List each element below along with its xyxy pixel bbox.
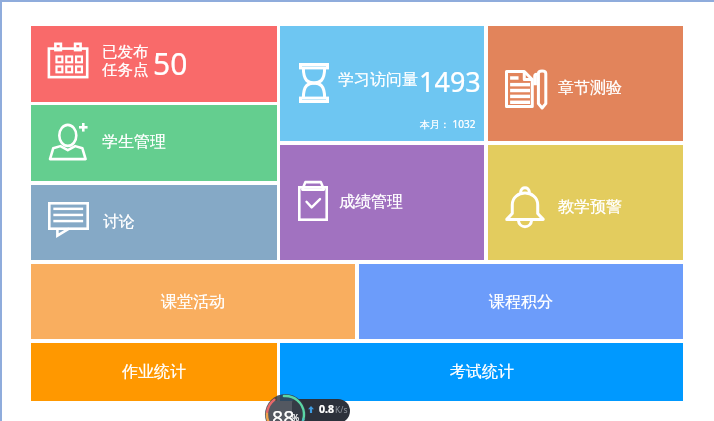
- button[interactable]: 课程积分: [359, 264, 683, 339]
- button[interactable]: 成绩管理: [280, 145, 484, 260]
- staticText: 作业统计: [122, 362, 186, 382]
- staticText: 课堂活动: [161, 292, 225, 312]
- button[interactable]: 章节测验: [488, 26, 683, 141]
- button[interactable]: 考试统计: [280, 343, 683, 401]
- staticText: 考试统计: [450, 362, 514, 382]
- other: CPU usage 88 percent: [265, 394, 306, 421]
- staticText: 讨论: [103, 212, 135, 232]
- staticText: 课程积分: [489, 292, 553, 312]
- staticText: 1493: [419, 63, 481, 100]
- staticText: 88: [272, 404, 295, 421]
- staticText: %: [292, 412, 300, 421]
- staticText: 章节测验: [558, 78, 622, 98]
- staticText: 任务点: [102, 60, 149, 80]
- button[interactable]: Network speed: [292, 399, 350, 421]
- staticText: 本月： 1032: [420, 117, 476, 131]
- staticText: 成绩管理: [339, 192, 403, 212]
- staticText: 教学预警: [558, 197, 622, 217]
- staticText: 学生管理: [102, 132, 166, 152]
- staticText: 已发布: [102, 42, 149, 62]
- staticText: 0.8: [319, 402, 334, 416]
- staticText: K/s: [335, 404, 348, 416]
- button[interactable]: 学习访问量 1493: [280, 26, 484, 141]
- button[interactable]: 课堂活动: [31, 264, 355, 339]
- staticText: 50: [153, 43, 188, 84]
- staticText: 学习访问量: [338, 70, 418, 90]
- button[interactable]: 作业统计: [31, 343, 277, 401]
- button[interactable]: 已发布任务点 50: [31, 26, 277, 102]
- button[interactable]: 学生管理: [31, 105, 277, 181]
- button[interactable]: 讨论: [31, 185, 277, 260]
- button[interactable]: 教学预警: [488, 145, 683, 260]
